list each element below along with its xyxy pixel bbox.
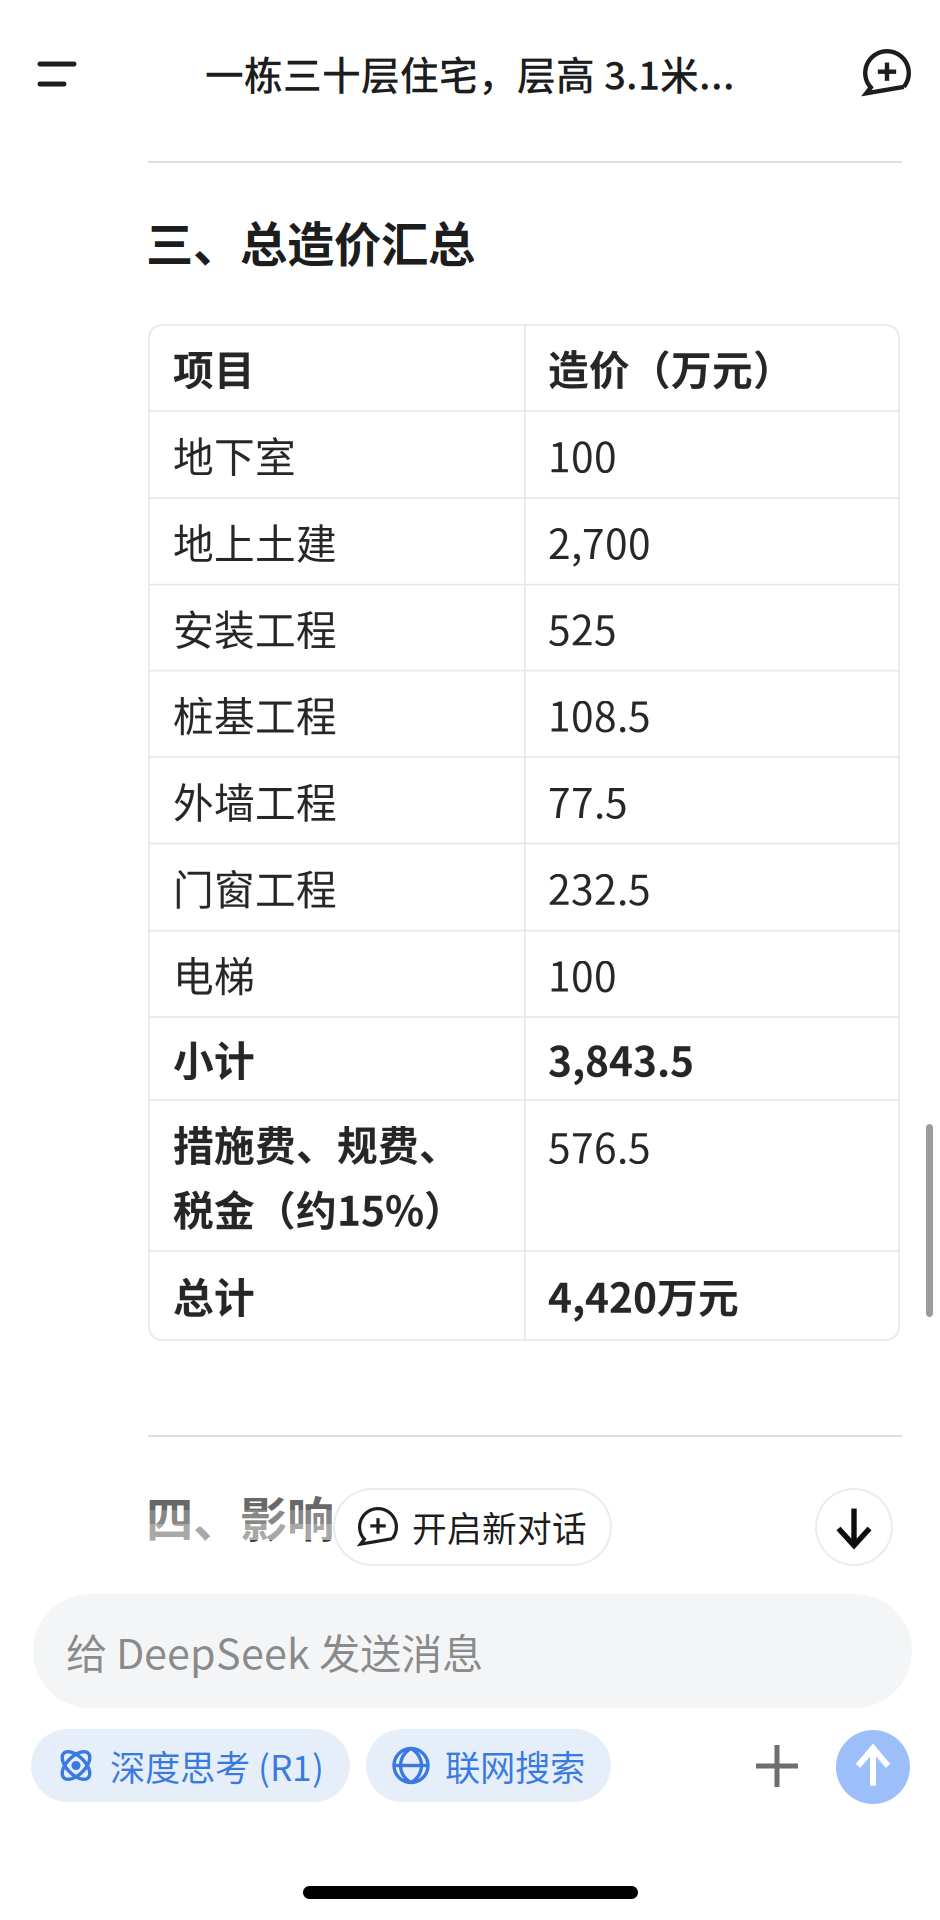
staticText: 三、总造价汇总	[146, 207, 475, 275]
staticText: 四、影响造	[146, 1482, 334, 1619]
staticText: 给 DeepSeek 发送消息	[66, 1621, 483, 1681]
staticText: 电梯	[173, 944, 255, 1003]
button[interactable]: Attach	[739, 1728, 815, 1804]
staticText: 造价（万元）	[548, 338, 794, 397]
staticText: 地上土建	[173, 512, 337, 571]
staticText: 100	[548, 425, 617, 484]
button[interactable]: 深度思考 (R1)	[31, 1729, 350, 1802]
button[interactable]: 开启新对话	[334, 1489, 611, 1565]
staticText: 桩基工程	[173, 684, 337, 743]
staticText: 一栋三十层住宅，层高 3.1米...	[205, 45, 735, 101]
staticText: 外墙工程	[173, 771, 337, 830]
staticText: 525	[548, 598, 617, 657]
staticText: 地下室	[173, 425, 296, 484]
button[interactable]: Scroll to bottom	[816, 1489, 892, 1565]
staticText: 77.5	[548, 771, 628, 830]
button[interactable]: Menu	[12, 29, 102, 119]
staticText: 深度思考 (R1)	[110, 1740, 324, 1791]
button[interactable]: 联网搜索	[366, 1729, 611, 1802]
staticText: 开启新对话	[412, 1502, 587, 1552]
button[interactable]: Send	[836, 1730, 910, 1804]
staticText: 232.5	[548, 858, 651, 916]
staticText: 项目	[173, 338, 255, 397]
staticText: 100	[548, 944, 617, 1003]
staticText: 门窗工程	[173, 858, 337, 916]
staticText: 576.5	[548, 1116, 651, 1175]
staticText: 3,843.5	[548, 1029, 694, 1088]
staticText: 小计	[173, 1029, 255, 1088]
staticText: 联网搜索	[445, 1740, 585, 1791]
button[interactable]: New chat	[842, 28, 932, 118]
staticText: 措施费、规费、	[173, 1114, 460, 1173]
staticText: 总计	[173, 1266, 255, 1324]
staticText: 4,420万元	[548, 1266, 739, 1324]
staticText: 108.5	[548, 684, 651, 743]
button[interactable]: 给 DeepSeek 发送消息	[33, 1594, 912, 1708]
staticText: 安装工程	[173, 598, 337, 657]
staticText: 税金（约15%）	[173, 1179, 465, 1237]
staticText: 2,700	[548, 512, 651, 571]
